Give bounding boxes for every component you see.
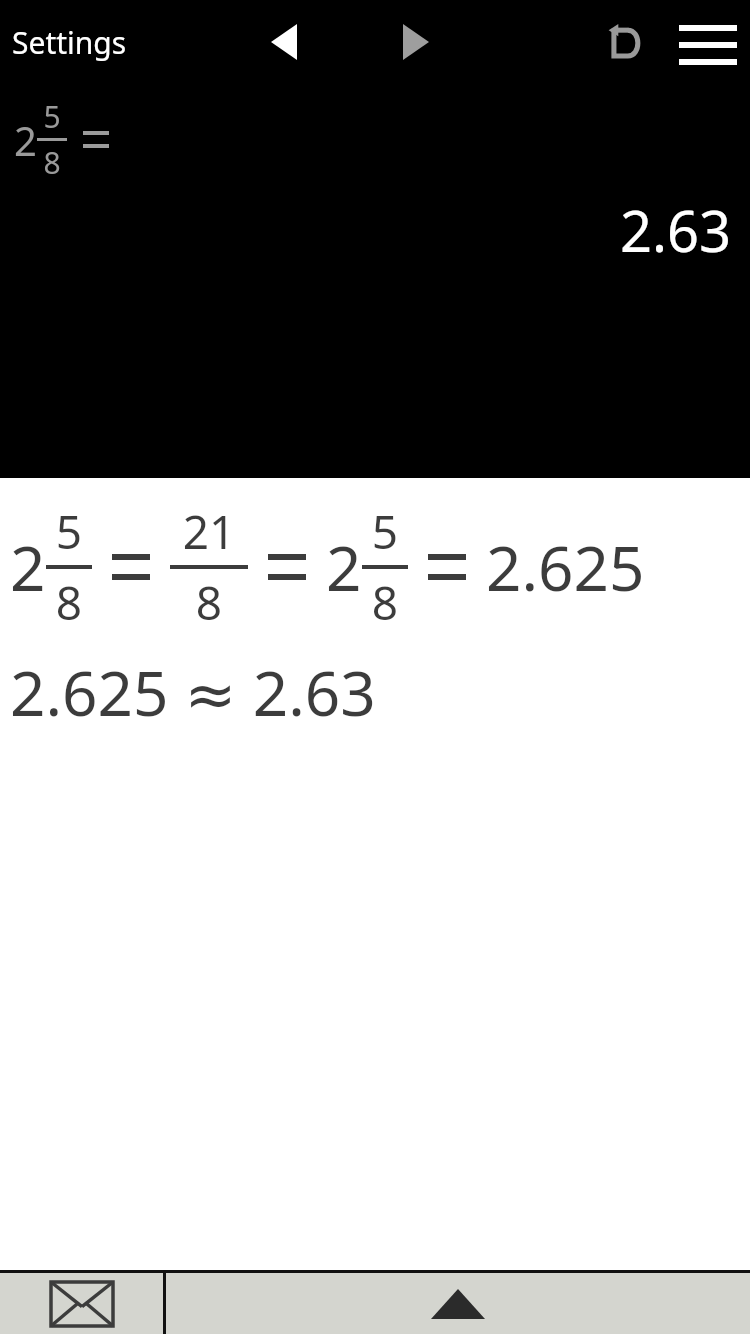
button[interactable]: Settings <box>0 16 139 69</box>
button[interactable]: Previous <box>248 6 320 78</box>
button[interactable]: Menu <box>672 6 744 78</box>
staticText: 5 <box>37 96 67 137</box>
staticText: 2.63 <box>620 192 732 268</box>
button[interactable]: Undo <box>592 6 664 78</box>
staticText: 2 <box>14 113 37 167</box>
staticText: 8 <box>362 571 408 634</box>
staticText: 8 <box>46 571 92 634</box>
staticText: 8 <box>37 142 67 183</box>
button[interactable]: Send feedback <box>0 1273 163 1334</box>
staticText: 2.625 ≈ 2.63 <box>10 650 376 734</box>
staticText: Settings <box>12 22 127 63</box>
staticText: 21 <box>170 500 248 563</box>
staticText: 2 <box>326 525 362 609</box>
staticText: 5 <box>362 500 408 563</box>
button[interactable]: Collapse <box>166 1273 750 1334</box>
button[interactable]: Next <box>380 6 452 78</box>
staticText: 2 <box>10 525 46 609</box>
staticText: 8 <box>170 571 248 634</box>
staticText: 2.625 <box>486 525 645 609</box>
staticText: 5 <box>46 500 92 563</box>
